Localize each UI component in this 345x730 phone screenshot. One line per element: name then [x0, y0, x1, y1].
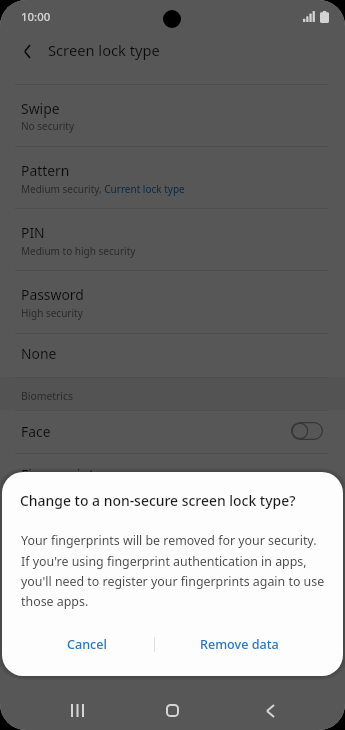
staticText: High security — [21, 306, 83, 320]
staticText: No security — [21, 119, 75, 133]
button[interactable] — [0, 410, 345, 452]
button[interactable]: Back — [246, 687, 294, 730]
staticText: PIN — [21, 223, 45, 242]
button[interactable] — [0, 146, 345, 208]
button[interactable]: Remove data — [154, 624, 325, 664]
button[interactable]: Recent apps — [53, 686, 101, 730]
staticText: Cancel — [67, 636, 107, 653]
button[interactable] — [0, 270, 345, 332]
staticText: Fingerprints — [21, 465, 101, 484]
staticText: Face — [21, 422, 51, 441]
staticText: Screen lock type — [48, 40, 160, 60]
staticText: Password — [21, 285, 84, 304]
staticText: Medium security, Current lock type — [21, 182, 185, 196]
button[interactable]: Home — [148, 686, 196, 730]
button[interactable] — [0, 330, 345, 375]
button[interactable] — [0, 208, 345, 270]
staticText: Medium to high security — [21, 244, 136, 258]
staticText: Biometrics — [21, 389, 73, 403]
staticText: Your fingerprints will be removed for yo… — [21, 532, 326, 609]
staticText: Change to a non-secure screen lock type? — [20, 491, 296, 510]
button[interactable]: Cancel — [20, 624, 153, 664]
staticText: Remove data — [200, 636, 279, 653]
button[interactable] — [0, 453, 345, 495]
staticText: 10:00 — [21, 9, 51, 25]
button[interactable] — [0, 84, 345, 147]
button[interactable]: Navigate up — [12, 37, 41, 66]
staticText: None — [21, 344, 57, 363]
staticText: Pattern — [21, 161, 70, 180]
staticText: Swipe — [21, 99, 60, 118]
